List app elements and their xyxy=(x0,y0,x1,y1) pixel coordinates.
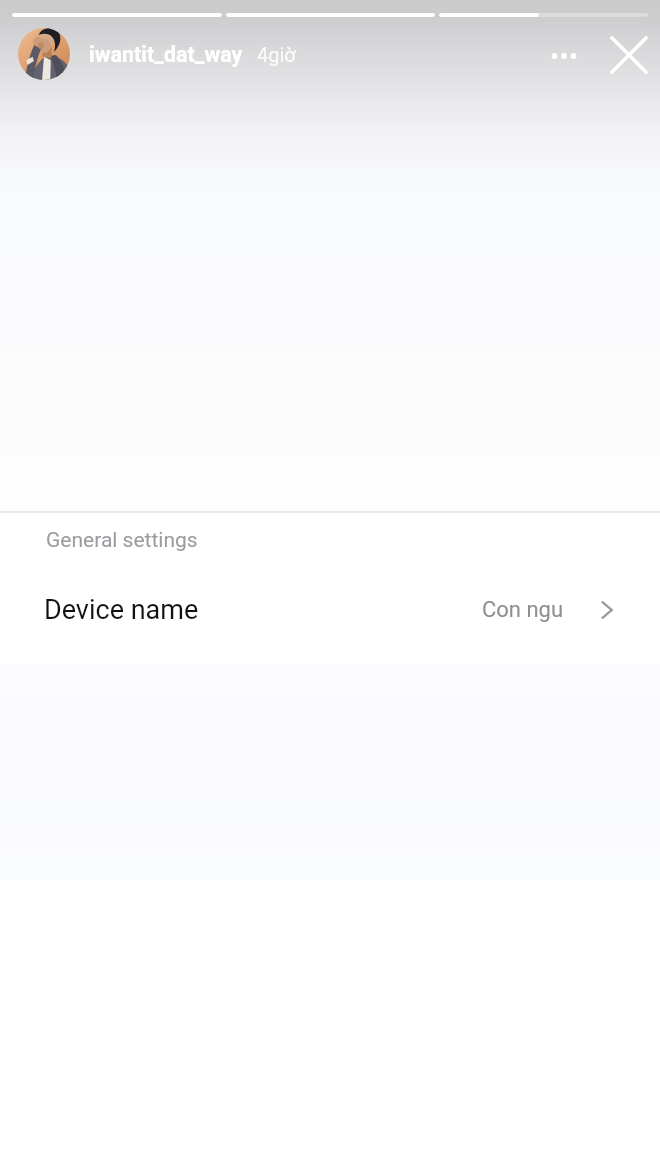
staticText: Con ngu xyxy=(482,597,564,623)
button[interactable]: iwantit_dat_way xyxy=(89,32,302,74)
button[interactable]: Close xyxy=(605,31,653,79)
button[interactable]: Profile photo xyxy=(18,28,70,80)
staticText: iwantit_dat_way xyxy=(89,42,243,67)
staticText: Device name xyxy=(44,594,199,626)
button[interactable]: More options xyxy=(538,30,590,82)
staticText: 4giờ xyxy=(257,43,296,66)
button[interactable]: Device name xyxy=(0,568,660,652)
staticText: General settings xyxy=(46,528,198,553)
